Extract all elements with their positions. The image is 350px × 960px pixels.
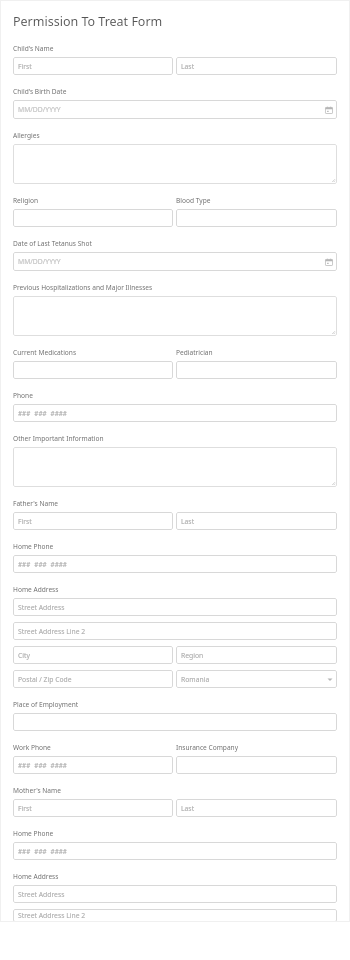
staticText: Current Medications xyxy=(13,348,77,357)
staticText: Place of Employment xyxy=(13,700,79,709)
staticText: Last xyxy=(181,804,195,813)
staticText: Romania xyxy=(181,675,210,684)
button[interactable] xyxy=(176,756,337,774)
staticText: Phone xyxy=(13,391,33,400)
staticText: Father's Name xyxy=(13,499,59,508)
staticText: Religion xyxy=(13,196,39,205)
staticText: Allergies xyxy=(13,131,40,140)
staticText: Home Address xyxy=(13,585,59,594)
button[interactable]: Pick child's birth date xyxy=(13,100,337,119)
button[interactable]: City xyxy=(13,646,173,664)
button[interactable] xyxy=(176,361,337,379)
staticText: Street Address Line 2 xyxy=(18,911,86,920)
button[interactable]: Postal / Zip Code xyxy=(13,670,173,688)
staticText: Other Important Information xyxy=(13,434,104,443)
staticText: First xyxy=(18,517,32,526)
button[interactable] xyxy=(13,296,337,336)
staticText: Home Address xyxy=(13,872,59,881)
staticText: Child's Birth Date xyxy=(13,87,67,96)
staticText: ### ### #### xyxy=(18,847,67,856)
button[interactable] xyxy=(13,713,337,731)
staticText: Street Address Line 2 xyxy=(18,627,86,636)
staticText: First xyxy=(18,62,32,71)
staticText: MM/DD/YYYY xyxy=(18,257,61,266)
staticText: Date of Last Tetanus Shot xyxy=(13,239,92,248)
button[interactable]: Select country xyxy=(176,670,337,688)
staticText: Street Address xyxy=(18,603,65,612)
staticText: Previous Hospitalizations and Major Illn… xyxy=(13,283,153,292)
staticText: Pediatrician xyxy=(176,348,213,357)
button[interactable]: Street Address xyxy=(13,885,337,903)
staticText: Permission To Treat Form xyxy=(13,13,163,30)
staticText: Child's Name xyxy=(13,44,54,53)
staticText: Last xyxy=(181,517,195,526)
button[interactable]: Region xyxy=(176,646,337,664)
staticText: ### ### #### xyxy=(18,409,67,418)
button[interactable]: First xyxy=(13,57,173,75)
staticText: Postal / Zip Code xyxy=(18,675,72,684)
button[interactable]: ### ### #### xyxy=(13,842,337,860)
button[interactable] xyxy=(13,361,173,379)
button[interactable] xyxy=(13,144,337,184)
staticText: Region xyxy=(181,651,204,660)
staticText: Work Phone xyxy=(13,743,51,752)
staticText: ### ### #### xyxy=(18,761,67,770)
button[interactable] xyxy=(13,209,173,227)
button[interactable] xyxy=(13,447,337,487)
staticText: Home Phone xyxy=(13,829,54,838)
button[interactable]: Last xyxy=(176,512,337,530)
staticText: City xyxy=(18,651,30,660)
staticText: Home Phone xyxy=(13,542,54,551)
button[interactable]: ### ### #### xyxy=(13,756,173,774)
button[interactable]: Street Address xyxy=(13,598,337,616)
button[interactable]: Street Address Line 2 xyxy=(13,622,337,640)
staticText: ### ### #### xyxy=(18,560,67,569)
button[interactable]: First xyxy=(13,512,173,530)
staticText: First xyxy=(18,804,32,813)
button[interactable]: Last xyxy=(176,57,337,75)
button[interactable]: First xyxy=(13,799,173,817)
staticText: Last xyxy=(181,62,195,71)
staticText: Street Address xyxy=(18,890,65,899)
staticText: MM/DD/YYYY xyxy=(18,105,61,114)
button[interactable]: ### ### #### xyxy=(13,555,337,573)
button[interactable]: ### ### #### xyxy=(13,404,337,422)
button[interactable]: Last xyxy=(176,799,337,817)
staticText: Mother's Name xyxy=(13,786,61,795)
button[interactable] xyxy=(176,209,337,227)
button[interactable]: Pick tetanus shot date xyxy=(13,252,337,271)
staticText: Blood Type xyxy=(176,196,211,205)
staticText: Insurance Company xyxy=(176,743,239,752)
button[interactable]: Street Address Line 2 xyxy=(13,909,337,922)
